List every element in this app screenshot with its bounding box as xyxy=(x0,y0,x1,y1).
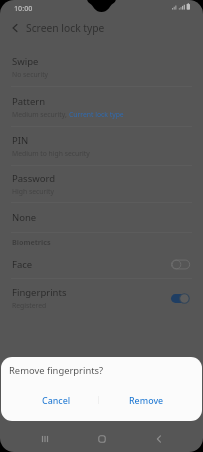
staticText: Cancel xyxy=(42,394,71,406)
staticText: Pattern xyxy=(12,95,46,108)
button[interactable]: Face xyxy=(0,250,203,278)
staticText: Remove fingerprints? xyxy=(9,364,104,377)
button[interactable]: Off xyxy=(171,259,190,270)
staticText: Remove xyxy=(129,394,164,406)
staticText: No security xyxy=(12,70,49,79)
staticText: Medium to high security xyxy=(12,149,90,158)
staticText: Registered xyxy=(12,301,47,310)
staticText: Biometrics xyxy=(12,237,51,247)
staticText: Swipe xyxy=(12,55,39,68)
button[interactable]: Remove xyxy=(99,387,202,413)
staticText: Screen lock type xyxy=(26,21,105,35)
button[interactable]: Home xyxy=(85,426,119,452)
staticText: Password xyxy=(12,172,55,185)
button[interactable]: Recent apps xyxy=(28,426,62,452)
staticText: Medium security, xyxy=(12,110,69,119)
staticText: Face xyxy=(12,258,33,271)
staticText: None xyxy=(12,211,37,224)
staticText: High security xyxy=(12,187,54,196)
button[interactable]: Navigate up xyxy=(0,16,26,40)
button[interactable]: Password xyxy=(0,166,203,202)
staticText: Fingerprints xyxy=(12,286,67,299)
staticText: Current lock type xyxy=(69,110,124,119)
button[interactable]: Cancel xyxy=(1,387,98,413)
button[interactable]: Back xyxy=(142,426,176,452)
button[interactable]: Pattern xyxy=(0,87,203,126)
staticText: PIN xyxy=(12,134,29,147)
button[interactable]: Fingerprints xyxy=(0,279,203,317)
staticText: 10:00 xyxy=(14,3,33,13)
button[interactable]: On xyxy=(171,293,190,304)
